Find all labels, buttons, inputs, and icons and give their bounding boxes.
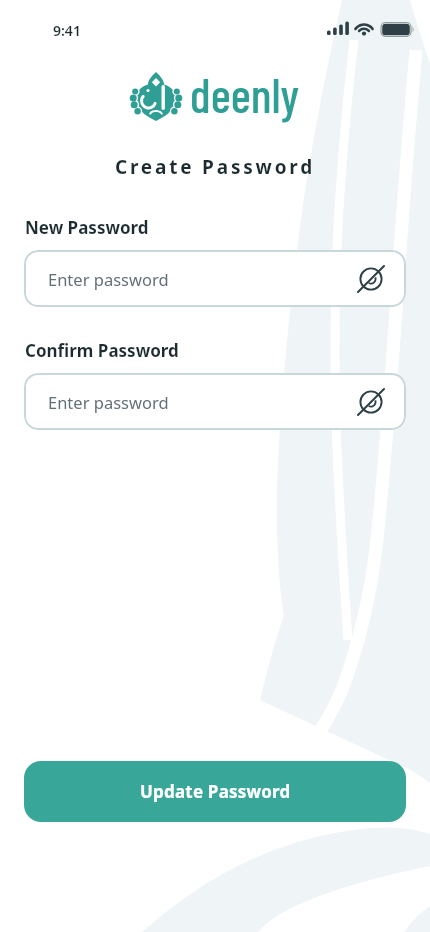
staticText: Create Password — [0, 154, 430, 180]
staticText: Update Password — [140, 780, 291, 803]
button[interactable] — [357, 388, 385, 416]
staticText: Confirm Password — [25, 339, 179, 362]
staticText: Enter password — [48, 268, 169, 290]
staticText: New Password — [25, 216, 149, 239]
button[interactable] — [357, 265, 385, 293]
button[interactable]: Enter password — [24, 250, 406, 307]
staticText: Enter password — [48, 391, 169, 413]
staticText: 9:41 — [53, 21, 81, 40]
staticText: deenly — [190, 65, 300, 123]
button[interactable]: Enter password — [24, 373, 406, 430]
button[interactable]: Update Password — [24, 761, 406, 822]
